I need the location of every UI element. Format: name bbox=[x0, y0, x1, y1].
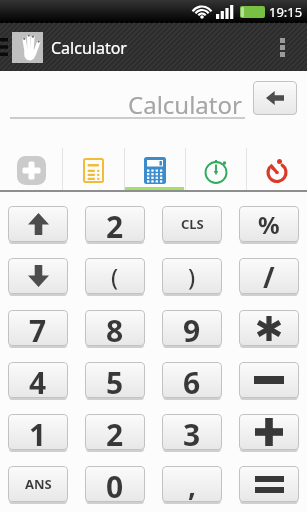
staticText: Calculator bbox=[51, 37, 127, 59]
staticText: CLS bbox=[181, 215, 204, 233]
button[interactable]: 3 bbox=[162, 414, 222, 450]
button[interactable] bbox=[8, 206, 68, 242]
staticText: 1 bbox=[29, 414, 47, 450]
staticText: ANS bbox=[25, 475, 52, 493]
button[interactable]: 9 bbox=[162, 310, 222, 346]
button[interactable]: 4 bbox=[8, 362, 68, 398]
button[interactable]: 7 bbox=[8, 310, 68, 346]
button[interactable] bbox=[8, 258, 68, 294]
button[interactable]: 8 bbox=[85, 310, 145, 346]
staticText: 2 bbox=[106, 206, 124, 242]
button[interactable] bbox=[246, 148, 307, 192]
button[interactable] bbox=[0, 148, 62, 192]
staticText: Calculator bbox=[128, 88, 242, 121]
staticText: % bbox=[258, 208, 280, 241]
button[interactable]: CLS bbox=[162, 206, 222, 242]
staticText: 0 bbox=[106, 466, 124, 502]
button[interactable]: 1 bbox=[8, 414, 68, 450]
staticText: 19:15 bbox=[269, 3, 303, 21]
staticText: 7 bbox=[29, 310, 47, 346]
button[interactable]: 0 bbox=[85, 466, 145, 502]
button[interactable]: 5 bbox=[85, 362, 145, 398]
staticText: , bbox=[188, 466, 196, 502]
button[interactable] bbox=[185, 148, 246, 192]
button[interactable]: 6 bbox=[162, 362, 222, 398]
staticText: / bbox=[263, 258, 275, 294]
staticText: 8 bbox=[106, 310, 124, 346]
button[interactable]: , bbox=[162, 466, 222, 502]
button[interactable] bbox=[124, 148, 185, 192]
staticText: 9 bbox=[183, 310, 201, 346]
button[interactable] bbox=[239, 310, 299, 346]
staticText: 3 bbox=[183, 414, 201, 450]
button[interactable] bbox=[239, 414, 299, 450]
staticText: ( bbox=[111, 261, 119, 292]
button[interactable]: % bbox=[239, 206, 299, 242]
button[interactable] bbox=[62, 148, 124, 192]
button[interactable] bbox=[253, 81, 297, 115]
button[interactable] bbox=[239, 466, 299, 502]
staticText: 4 bbox=[29, 362, 47, 398]
staticText: 6 bbox=[183, 362, 201, 398]
staticText: 2 bbox=[106, 414, 124, 450]
button[interactable] bbox=[280, 38, 285, 57]
staticText: ) bbox=[188, 261, 196, 292]
button[interactable]: 2 bbox=[85, 206, 145, 242]
button[interactable]: ANS bbox=[8, 466, 68, 502]
button[interactable] bbox=[239, 362, 299, 398]
button[interactable]: / bbox=[239, 258, 299, 294]
button[interactable]: ) bbox=[162, 258, 222, 294]
staticText: 5 bbox=[106, 362, 124, 398]
button[interactable]: ( bbox=[85, 258, 145, 294]
button[interactable]: 2 bbox=[85, 414, 145, 450]
